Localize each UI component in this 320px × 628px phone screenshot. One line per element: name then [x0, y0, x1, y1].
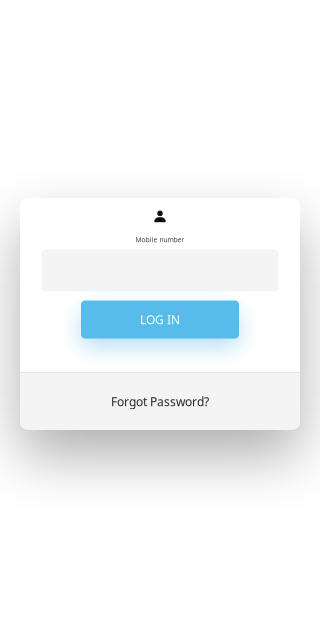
- staticText: Mobile number: [135, 235, 184, 244]
- staticText: LOG IN: [140, 312, 180, 327]
- staticText: Forgot Password?: [111, 393, 209, 409]
- button[interactable]: Forgot Password?: [20, 373, 300, 430]
- button[interactable]: LOG IN: [81, 301, 239, 339]
